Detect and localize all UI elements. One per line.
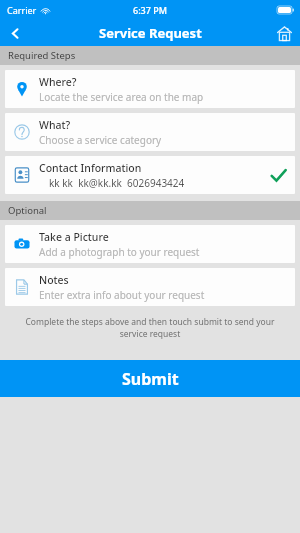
staticText: Where? xyxy=(39,75,77,89)
staticText: Submit xyxy=(122,368,179,390)
button[interactable]: What? xyxy=(5,113,295,151)
button[interactable]: Submit xyxy=(0,360,300,397)
staticText: Complete the steps above and then touch … xyxy=(18,316,282,340)
button[interactable]: Home xyxy=(268,20,300,46)
staticText: Optional xyxy=(8,204,47,217)
staticText: 6:37 PM xyxy=(133,4,167,16)
staticText: Add a photograph to your request xyxy=(39,245,200,259)
staticText: Take a Picture xyxy=(39,230,109,244)
staticText: Contact Information xyxy=(39,161,142,175)
button[interactable]: Where? xyxy=(5,70,295,108)
staticText: Service Request xyxy=(99,24,202,42)
staticText: Required Steps xyxy=(8,49,76,62)
button[interactable]: Notes xyxy=(5,268,295,306)
staticText: kk kk kk@kk.kk 6026943424 xyxy=(49,176,185,190)
staticText: Choose a service category xyxy=(39,133,162,147)
button[interactable]: Back xyxy=(0,20,30,46)
staticText: Notes xyxy=(39,273,69,287)
staticText: Enter extra info about your request xyxy=(39,288,205,302)
staticText: Carrier xyxy=(7,4,37,16)
button[interactable]: Take a Picture xyxy=(5,225,295,263)
staticText: Locate the service area on the map xyxy=(39,90,204,104)
staticText: What? xyxy=(39,118,71,132)
button[interactable]: Contact Information xyxy=(5,156,295,194)
